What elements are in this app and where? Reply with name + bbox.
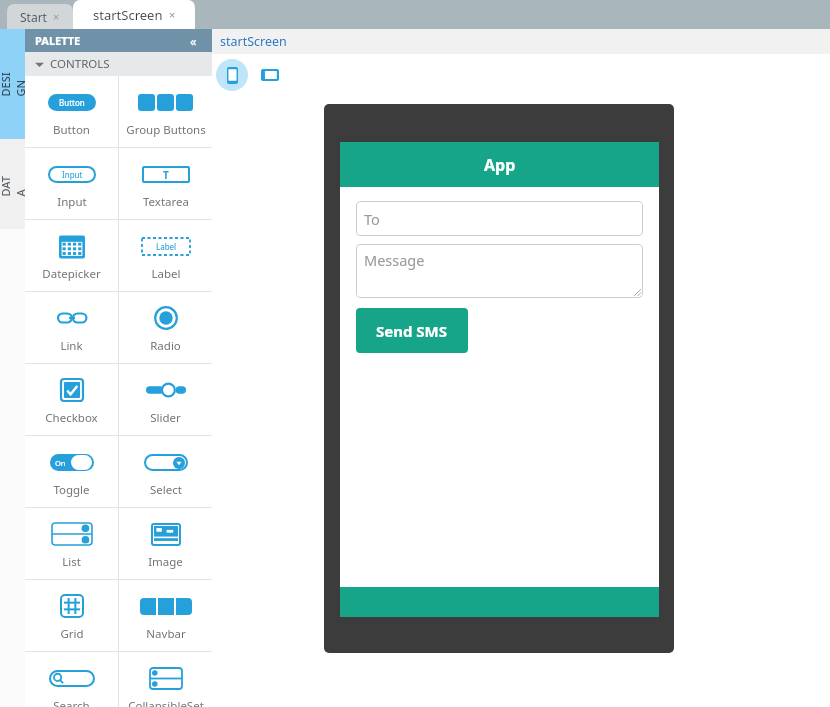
staticText: Start [20,9,47,25]
button[interactable]: Start [7,4,73,29]
staticText: Select [150,482,182,498]
staticText: Label [156,241,177,252]
staticText: Radio [150,338,181,354]
staticText: startScreen [220,33,287,50]
button[interactable]: Datepicker [25,220,118,291]
button[interactable]: On [25,436,118,507]
staticText: To [364,209,380,229]
staticText: Checkbox [45,410,98,426]
staticText: Button [59,97,85,108]
staticText: Datepicker [42,266,101,282]
staticText: On [55,458,66,468]
button[interactable]: Image [119,508,212,579]
button[interactable]: Input [25,148,118,219]
staticText: Textarea [143,194,189,210]
staticText: CONTROLS [50,56,110,72]
button[interactable]: Slider [119,364,212,435]
button[interactable]: Label [119,220,212,291]
button[interactable]: Message [356,244,643,298]
staticText: PALETTE [35,33,81,48]
button[interactable]: Checkbox [25,364,118,435]
button[interactable]: CollapsibleSet [119,652,212,707]
staticText: CollapsibleSet [128,698,204,707]
button[interactable]: Select [119,436,212,507]
button[interactable]: CONTROLS [35,52,212,76]
button[interactable]: Landscape orientation [257,62,283,88]
staticText: × [169,7,176,22]
staticText: Link [60,338,83,354]
button[interactable]: Grid [25,580,118,651]
button[interactable]: Navbar [119,580,212,651]
button[interactable]: Search [25,652,118,707]
staticText: startScreen [93,6,163,24]
staticText: Label [151,266,181,282]
button[interactable]: Radio [119,292,212,363]
button[interactable]: T [119,148,212,219]
staticText: Image [148,554,183,570]
staticText: Group Buttons [126,122,206,138]
staticText: T [163,168,169,182]
button[interactable]: Group Buttons [119,76,212,147]
button[interactable]: Button [25,76,118,147]
button[interactable]: Send SMS [356,308,468,353]
button[interactable]: DATA [0,139,25,229]
button[interactable]: Link [25,292,118,363]
button[interactable]: Collapse palette [184,32,202,50]
staticText: DATA [0,171,27,196]
staticText: Send SMS [376,321,448,341]
staticText: Button [53,122,90,138]
button[interactable]: List [25,508,118,579]
staticText: Input [62,169,83,180]
staticText: Search [53,698,90,707]
staticText: Toggle [53,482,90,498]
staticText: Navbar [146,626,186,642]
button[interactable]: Portrait orientation [216,59,248,91]
button[interactable]: startScreen [73,0,195,29]
staticText: Message [364,250,425,270]
staticText: DESIGN [0,71,27,96]
staticText: Grid [60,626,84,642]
staticText: « [190,32,197,50]
staticText: App [484,154,516,176]
staticText: Slider [150,410,181,426]
button[interactable]: DESIGN [0,29,25,139]
staticText: Input [57,194,87,210]
button[interactable]: To [356,201,643,236]
staticText: List [62,554,81,570]
staticText: × [53,9,60,24]
